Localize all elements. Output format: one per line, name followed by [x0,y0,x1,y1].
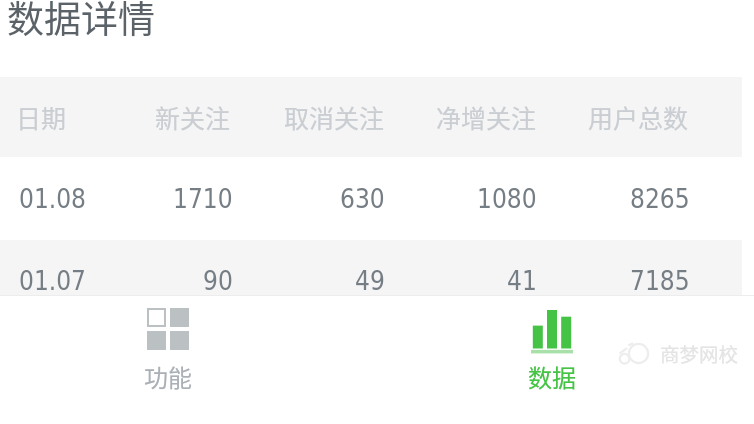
button[interactable]: 49 [233,240,385,321]
button[interactable]: 01.07 [0,240,86,321]
staticText: 01.08 [19,184,86,214]
staticText: 数据 [528,359,576,394]
staticText: 1080 [477,184,537,214]
staticText: 新关注 [155,99,231,135]
button[interactable]: 8265 [537,158,690,239]
staticText: 功能 [144,359,192,394]
staticText: 商梦网校 [660,339,739,367]
staticText: 数据详情 [7,0,155,44]
staticText: 净增关注 [436,99,537,135]
staticText: 41 [507,266,537,296]
button[interactable]: 1710 [86,158,233,239]
staticText: 取消关注 [284,99,385,135]
staticText: 日期 [16,99,67,135]
button[interactable]: 630 [233,158,385,239]
staticText: 1710 [173,184,233,214]
staticText: 7185 [630,266,690,296]
staticText: 90 [203,266,233,296]
staticText: 630 [340,184,385,214]
other: 数据 [531,310,573,354]
button[interactable]: 7185 [537,240,690,321]
button[interactable]: 01.08 [0,158,86,239]
staticText: 49 [355,266,385,296]
button[interactable]: 90 [86,240,233,321]
button[interactable]: 数据 [498,298,606,410]
staticText: 8265 [630,184,690,214]
button[interactable]: 功能 [114,298,222,410]
button[interactable]: 41 [385,240,537,321]
staticText: 用户总数 [588,99,689,135]
staticText: 01.07 [19,266,86,296]
other: 功能 [147,308,189,350]
button[interactable]: 1080 [385,158,537,239]
